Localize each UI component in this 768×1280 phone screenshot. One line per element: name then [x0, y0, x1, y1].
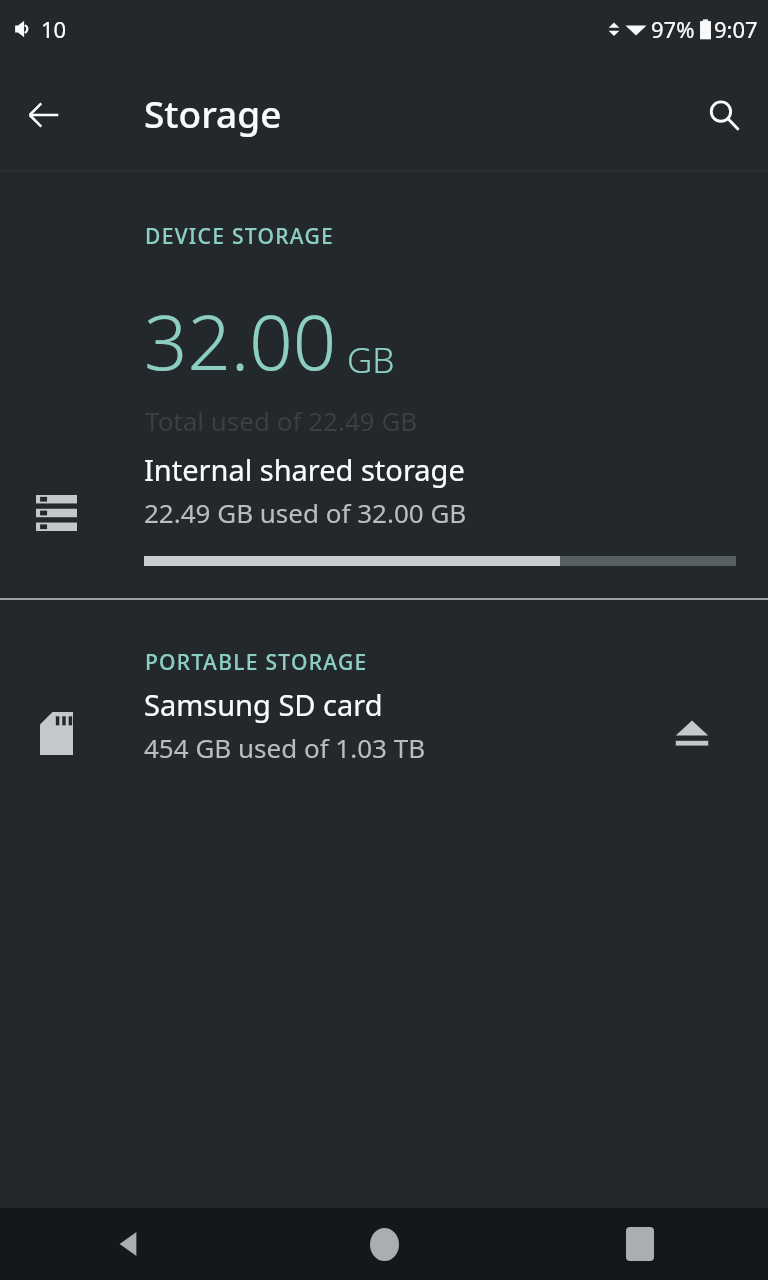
button[interactable]: Internal shared storage	[0, 438, 768, 588]
staticText: 22.49 GB used of 32.00 GB	[144, 495, 467, 530]
button[interactable]: Samsung SD card	[0, 677, 768, 789]
staticText: 454 GB used of 1.03 TB	[144, 730, 426, 765]
staticText: GB	[347, 336, 395, 384]
staticText: Internal shared storage	[144, 450, 465, 489]
staticText: 97%	[651, 14, 695, 44]
staticText: 10	[41, 14, 67, 44]
staticText: DEVICE STORAGE	[145, 222, 335, 251]
staticText: 32.00	[144, 289, 337, 393]
button[interactable]: Recent apps	[512, 1208, 768, 1280]
staticText: Total used of 22.49 GB	[145, 403, 418, 438]
button[interactable]: Search	[690, 81, 758, 149]
button[interactable]: Back	[0, 1208, 256, 1280]
staticText: 9:07	[714, 14, 758, 44]
button[interactable]: Back	[10, 81, 78, 149]
button[interactable]: Eject	[664, 705, 720, 761]
staticText: Storage	[144, 88, 282, 138]
button[interactable]: Home	[256, 1208, 512, 1280]
staticText: Samsung SD card	[144, 685, 383, 724]
staticText: PORTABLE STORAGE	[145, 648, 368, 677]
